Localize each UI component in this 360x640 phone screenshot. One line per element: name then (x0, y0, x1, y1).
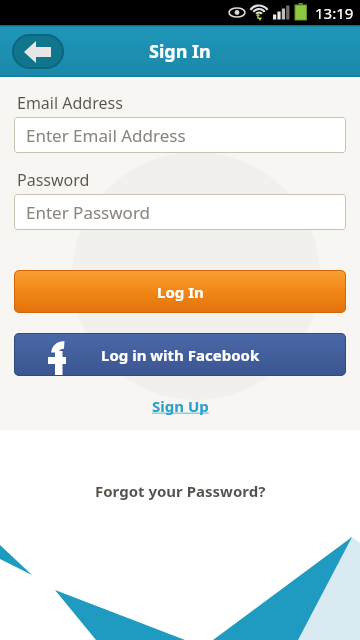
button[interactable]: Enter Password (14, 194, 346, 230)
staticText: Log In (157, 282, 204, 302)
staticText: Password (17, 169, 90, 191)
button[interactable]: Forgot your Password? (95, 481, 266, 501)
staticText: Enter Email Address (26, 124, 186, 147)
staticText: Sign In (149, 39, 211, 64)
staticText: Log in with Facebook (101, 345, 260, 365)
button[interactable] (12, 34, 64, 69)
button[interactable]: Sign Up (152, 396, 209, 416)
button[interactable]: Log In (14, 270, 346, 313)
button[interactable]: Log in with Facebook (14, 333, 346, 376)
staticText: Email Address (17, 92, 123, 114)
staticText: Enter Password (26, 201, 151, 224)
button[interactable]: Enter Email Address (14, 117, 346, 153)
staticText: 13:19 (315, 3, 354, 23)
